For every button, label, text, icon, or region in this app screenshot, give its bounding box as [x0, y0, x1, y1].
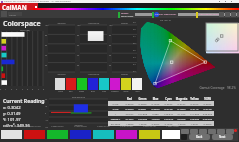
staticText: 0 [45, 112, 47, 115]
staticText: -20 [45, 126, 48, 129]
staticText: 20 [109, 64, 112, 67]
button[interactable] [221, 13, 239, 16]
button[interactable]: Step [226, 129, 234, 134]
staticText: 0.3149 [201, 107, 214, 110]
staticText: 60 [77, 44, 80, 47]
staticText: 1.2731 [188, 122, 201, 125]
staticText: Display [121, 12, 129, 15]
staticText: 10 [45, 105, 48, 108]
button[interactable]: Step [208, 129, 216, 134]
button[interactable] [8, 12, 22, 16]
staticText: 2.0452 [149, 122, 162, 125]
staticText: Green [136, 97, 149, 101]
staticText: 9.886 [149, 112, 162, 115]
staticText: 0.4472 [188, 102, 201, 105]
staticText: 100W [201, 97, 214, 101]
staticText: Blue [149, 97, 162, 101]
staticText: 0.6259 0.3294 [24, 125, 45, 128]
staticText: 137.095 [136, 117, 149, 120]
staticText: 0.9 [133, 21, 136, 23]
button[interactable] [135, 13, 153, 16]
staticText: Magenta [111, 90, 119, 92]
staticText: 0.1584 [175, 107, 188, 110]
staticText: Gamut Coverage 98.2% [160, 86, 236, 90]
staticText: 0.4 [133, 56, 136, 58]
staticText: 349.363 [201, 112, 214, 115]
staticText: Red [123, 97, 136, 101]
staticText: 3 [16, 88, 18, 91]
staticText: 8 [43, 88, 45, 91]
staticText: 0.2232 [162, 102, 175, 105]
button[interactable]: Info [154, 12, 159, 17]
staticText: 40 [77, 54, 80, 57]
staticText: Next [219, 135, 226, 139]
staticText: 179.295 [188, 117, 201, 120]
staticText: 80 [109, 34, 112, 37]
staticText: 0.7 [133, 35, 136, 37]
staticText: 0.3042 [201, 102, 214, 105]
staticText: 20 [45, 98, 48, 101]
staticText: 0.5115 [188, 107, 201, 110]
staticText: 5 [27, 88, 29, 91]
staticText: 1.2759 [175, 122, 188, 125]
staticText: Gamut [112, 22, 137, 25]
staticText: 0.0000 [201, 122, 214, 125]
button[interactable] [178, 13, 220, 16]
staticText: y: 0.3149 [3, 111, 21, 117]
staticText: CalMAN [2, 3, 27, 10]
staticText: 1 [5, 88, 7, 91]
button[interactable]: Step [190, 129, 198, 134]
staticText: Cyan [162, 97, 175, 101]
staticText: 52.046 [175, 117, 188, 120]
button[interactable]: 100W [162, 130, 183, 139]
staticText: 1.0000 1.0000 [162, 125, 183, 128]
staticText: 349.363 [201, 117, 214, 120]
staticText: 0.2232 0.3148 [93, 125, 114, 128]
button[interactable]: Step [181, 129, 189, 134]
button[interactable]: Step [217, 129, 225, 134]
staticText: 40 [45, 54, 48, 57]
staticText: Current Reading [3, 97, 45, 104]
staticText: 0.6 [133, 42, 136, 44]
button[interactable]: 100W [132, 78, 142, 90]
staticText: Colorspace [3, 19, 41, 29]
staticText: 100 [109, 24, 113, 27]
button[interactable]: Step [199, 129, 207, 134]
staticText: 0.1526 0.0544 [70, 125, 91, 128]
staticText: Gamma [48, 73, 75, 76]
staticText: 39.347 [123, 112, 136, 115]
button[interactable]: Back [189, 134, 210, 140]
staticText: x: 0.3042 [3, 105, 21, 111]
staticText: 140.647 [162, 112, 175, 115]
staticText: 131.858 [136, 112, 149, 115]
staticText: Target Y [108, 117, 123, 120]
staticText: Home [9, 13, 16, 16]
button[interactable]: Next [212, 134, 233, 140]
staticText: 0.6091 [136, 107, 149, 110]
staticText: -10 [45, 119, 48, 122]
staticText: 7 [38, 88, 40, 91]
staticText: White [58, 90, 63, 92]
staticText: 4 [22, 88, 24, 91]
staticText: Red [69, 90, 73, 92]
